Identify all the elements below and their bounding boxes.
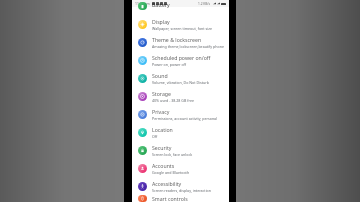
staticText: 40% used - 38.28 GB free: [152, 98, 194, 103]
button[interactable]: Sound: [132, 69, 229, 87]
button[interactable]: Battery: [132, 2, 229, 10]
button[interactable]: Location: [132, 123, 229, 141]
button[interactable]: Privacy: [132, 105, 229, 123]
staticText: Location: [152, 126, 173, 133]
staticText: Storage: [152, 90, 171, 97]
staticText: Accounts: [152, 162, 175, 169]
staticText: Permissions, account activity, personal …: [152, 116, 225, 121]
staticText: Google and Bluetooth: [152, 170, 190, 175]
staticText: Smart controls: [152, 195, 188, 202]
staticText: Privacy: [152, 108, 170, 115]
staticText: Power on, power off: [152, 62, 187, 67]
staticText: Accessibility: [152, 180, 182, 187]
staticText: Wallpaper, screen timeout, font size: [152, 26, 212, 31]
staticText: Screen lock, face unlock: [152, 152, 193, 157]
staticText: Display: [152, 18, 170, 25]
staticText: Off: [152, 134, 158, 139]
staticText: Scheduled power on/off: [152, 54, 211, 61]
button[interactable]: Accounts: [132, 159, 229, 177]
staticText: Battery: [152, 2, 170, 9]
button[interactable]: Scheduled power on/off: [132, 51, 229, 69]
staticText: 11:36 am: [135, 1, 150, 6]
button[interactable]: Display: [132, 15, 229, 33]
button[interactable]: Storage: [132, 87, 229, 105]
staticText: 1.2 KB/s: [198, 2, 211, 6]
staticText: Security: [152, 144, 172, 151]
staticText: Sound: [152, 72, 168, 79]
staticText: Screen readers, display, interaction con…: [152, 188, 225, 193]
button[interactable]: Theme & lockscreen: [132, 33, 229, 51]
button[interactable]: Accessibility: [132, 177, 229, 195]
button[interactable]: Security: [132, 141, 229, 159]
staticText: Amazing theme,lockscreen,beautify phone: [152, 44, 224, 49]
staticText: Volume, vibration, Do Not Disturb: [152, 80, 209, 85]
staticText: Theme & lockscreen: [152, 36, 202, 43]
button[interactable]: Smart controls: [132, 195, 229, 202]
